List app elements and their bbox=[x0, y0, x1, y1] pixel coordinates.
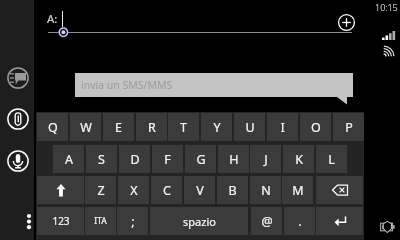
staticText: W bbox=[80, 119, 92, 136]
staticText: T bbox=[180, 119, 187, 136]
button[interactable]: ; bbox=[117, 207, 148, 235]
button[interactable]: P bbox=[333, 113, 364, 141]
button[interactable]: D bbox=[119, 145, 150, 173]
staticText: L bbox=[328, 151, 335, 168]
button[interactable]: V bbox=[184, 176, 215, 204]
button[interactable]: Messaggio vocale bbox=[7, 150, 29, 172]
staticText: M bbox=[292, 182, 304, 199]
button[interactable]: J bbox=[250, 145, 281, 173]
button[interactable]: Altro bbox=[23, 208, 36, 236]
button[interactable]: Maiuscole bbox=[37, 176, 84, 204]
other: Wi-Fi bbox=[383, 46, 395, 57]
button[interactable]: Invio bbox=[316, 207, 363, 235]
staticText: X bbox=[130, 182, 138, 199]
button[interactable]: Z bbox=[85, 176, 116, 204]
staticText: U bbox=[245, 119, 255, 136]
button[interactable]: A bbox=[53, 145, 84, 173]
staticText: @ bbox=[261, 213, 273, 230]
staticText: Q bbox=[48, 119, 58, 136]
staticText: Y bbox=[213, 119, 221, 136]
staticText: G bbox=[196, 151, 206, 168]
staticText: A: bbox=[47, 11, 58, 27]
staticText: P bbox=[345, 119, 353, 136]
staticText: S bbox=[98, 151, 105, 168]
staticText: A bbox=[65, 151, 73, 168]
button[interactable]: 123 bbox=[37, 207, 84, 235]
button[interactable]: U bbox=[234, 113, 265, 141]
staticText: ; bbox=[131, 213, 135, 230]
button[interactable]: @ bbox=[251, 207, 282, 235]
button[interactable]: . bbox=[284, 207, 315, 235]
staticText: spazio bbox=[183, 214, 216, 229]
staticText: . bbox=[298, 213, 302, 230]
other: Segnale bbox=[382, 30, 396, 40]
staticText: I bbox=[280, 119, 285, 136]
button[interactable]: Aggiungi destinatario bbox=[337, 13, 356, 32]
staticText: F bbox=[164, 151, 171, 168]
button[interactable]: W bbox=[70, 113, 101, 141]
button[interactable]: C bbox=[151, 176, 182, 204]
button[interactable]: L bbox=[316, 145, 347, 173]
staticText: 123 bbox=[52, 214, 70, 228]
button[interactable]: F bbox=[152, 145, 183, 173]
button[interactable]: invia un SMS/MMS bbox=[75, 73, 353, 105]
button[interactable]: Q bbox=[37, 113, 68, 141]
button[interactable]: N bbox=[250, 176, 281, 204]
staticText: J bbox=[264, 151, 268, 168]
button[interactable]: X bbox=[118, 176, 149, 204]
button[interactable]: R bbox=[136, 113, 167, 141]
button[interactable]: M bbox=[282, 176, 313, 204]
staticText: Z bbox=[97, 182, 105, 199]
staticText: C bbox=[163, 182, 171, 199]
button[interactable]: T bbox=[168, 113, 199, 141]
staticText: H bbox=[229, 151, 239, 168]
button[interactable]: I bbox=[267, 113, 298, 141]
button[interactable]: Allega file bbox=[7, 108, 29, 130]
staticText: N bbox=[261, 182, 271, 199]
staticText: B bbox=[228, 182, 237, 199]
staticText: E bbox=[115, 119, 122, 136]
staticText: invia un SMS/MMS bbox=[81, 78, 173, 92]
button[interactable]: spazio bbox=[150, 207, 248, 235]
button[interactable]: K bbox=[283, 145, 314, 173]
button[interactable]: E bbox=[103, 113, 134, 141]
staticText: K bbox=[295, 151, 303, 168]
staticText: R bbox=[148, 119, 156, 136]
button[interactable]: H bbox=[218, 145, 249, 173]
button[interactable]: G bbox=[185, 145, 216, 173]
button[interactable]: O bbox=[300, 113, 331, 141]
button[interactable]: Y bbox=[201, 113, 232, 141]
staticText: V bbox=[196, 182, 204, 199]
button[interactable]: S bbox=[86, 145, 117, 173]
button[interactable]: ITA bbox=[85, 207, 116, 235]
button[interactable]: Backspace bbox=[316, 176, 363, 204]
button[interactable]: Messaggi bbox=[7, 67, 29, 89]
staticText: ITA bbox=[94, 215, 107, 227]
button[interactable]: B bbox=[217, 176, 248, 204]
staticText: O bbox=[311, 119, 321, 136]
staticText: D bbox=[130, 151, 140, 168]
other: Batteria bbox=[380, 221, 396, 233]
staticText: 10:15 bbox=[375, 1, 398, 13]
